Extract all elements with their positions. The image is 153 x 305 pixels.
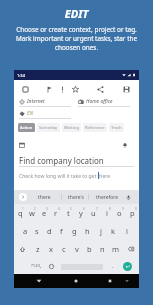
button[interactable]: Action [18,123,35,132]
staticText: 9 [122,207,124,211]
button[interactable]: Backspace [122,240,139,258]
button[interactable]: w [26,204,38,222]
button[interactable]: Emoji [46,258,57,274]
staticText: w [29,208,35,218]
button[interactable]: Waiting [62,123,81,132]
staticText: c [62,244,66,254]
button[interactable]: Period [107,258,118,274]
staticText: a [23,226,28,236]
button[interactable]: Date [18,141,26,149]
staticText: ?123 [31,263,41,269]
button[interactable]: there [32,190,56,204]
button[interactable]: Shift [14,240,31,258]
button[interactable]: r [50,204,62,222]
button[interactable]: Home office [78,98,113,105]
staticText: Choose or create context, project or tag… [0,25,153,52]
button[interactable]: v [70,240,83,258]
button[interactable]: Someday [37,123,60,132]
button[interactable]: s [31,222,43,240]
button[interactable]: f [55,222,68,240]
button[interactable]: Reference [83,123,107,132]
button[interactable]: Flag [43,83,55,95]
button[interactable]: m [109,240,122,258]
button[interactable]: Priority [56,83,68,95]
button[interactable]: Reminder [121,141,129,149]
button[interactable]: Star [69,83,81,95]
button[interactable]: o [113,204,126,222]
staticText: x [49,244,53,254]
staticText: t [67,208,70,218]
button[interactable]: x [44,240,57,258]
button[interactable]: e [38,204,50,222]
button[interactable]: h [81,222,94,240]
staticText: Home office [86,98,113,105]
button[interactable]: Recents [104,274,116,288]
staticText: 6 [83,207,85,211]
button[interactable]: Internet [19,98,45,105]
button[interactable]: More suggestions [19,193,27,201]
staticText: n [100,244,105,254]
staticText: 2 [34,207,36,211]
button[interactable]: b [83,240,96,258]
button[interactable]: k [107,222,120,240]
staticText: p [130,208,135,218]
staticText: Reference [85,125,105,131]
button[interactable]: Checkbox [19,83,31,95]
button[interactable]: j [94,222,107,240]
staticText: r [54,208,58,218]
staticText: v [75,244,79,254]
staticText: s [35,226,39,236]
button[interactable]: l [120,222,133,240]
staticText: EN [27,110,34,117]
button[interactable]: q [14,204,26,222]
button[interactable]: Save [120,83,132,95]
button[interactable]: Share [94,83,106,95]
button[interactable]: u [87,204,100,222]
button[interactable]: c [57,240,70,258]
staticText: g [72,226,77,236]
staticText: b [87,244,92,254]
button[interactable]: Comma [35,258,46,274]
staticText: there's [68,194,84,201]
staticText: q [18,208,23,218]
button[interactable]: g [68,222,81,240]
staticText: Waiting [64,125,79,131]
staticText: k [111,226,116,236]
staticText: Someday [39,125,58,131]
staticText: Find company location [19,155,104,166]
staticText: z [36,244,40,254]
button[interactable]: EN [19,110,34,117]
staticText: , [40,263,42,270]
button[interactable]: therefore [93,190,121,204]
button[interactable]: Enter [123,262,132,271]
button[interactable]: a [19,222,31,240]
button[interactable]: ?123 [28,258,44,274]
staticText: there [38,194,51,201]
button[interactable]: Trash [109,123,124,132]
staticText: 1 [22,207,24,211]
staticText: h [85,226,90,236]
button[interactable]: there's [64,190,88,204]
button[interactable]: t [62,204,74,222]
staticText: l [126,226,128,236]
staticText: e [42,208,47,218]
button[interactable]: z [31,240,44,258]
button[interactable]: y [74,204,87,222]
staticText: o [117,208,122,218]
staticText: 4 [58,207,60,211]
button[interactable]: i [100,204,113,222]
button[interactable]: n [96,240,109,258]
staticText: Trash [111,125,122,131]
staticText: 0 [135,207,137,211]
staticText: m [112,244,120,254]
button[interactable]: Hide keyboard [121,274,133,288]
button[interactable]: Back [33,274,45,288]
button[interactable]: Voice input [124,190,132,204]
staticText: u [91,208,96,218]
staticText: 3 [46,207,48,211]
button[interactable]: d [43,222,55,240]
button[interactable]: p [126,204,139,222]
staticText: 8 [109,207,111,211]
button[interactable]: Home [70,274,82,288]
